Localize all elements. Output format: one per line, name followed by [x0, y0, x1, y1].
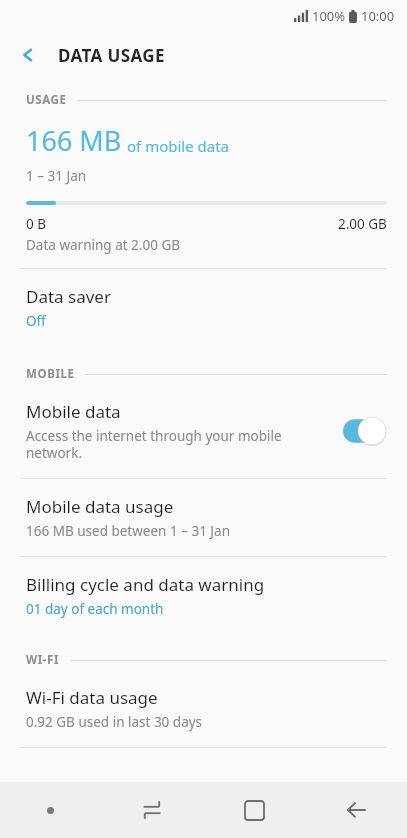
staticText: 166 MB used between 1 – 31 Jan — [26, 522, 230, 540]
staticText: Wi-Fi data usage — [26, 686, 158, 709]
staticText: 10:00 — [361, 7, 395, 25]
staticText: Access the internet through your mobile … — [26, 427, 327, 462]
staticText: DATA USAGE — [58, 44, 165, 67]
button[interactable]: Data saver — [0, 269, 407, 348]
staticText: Mobile data — [26, 400, 121, 423]
staticText: 2.00 GB — [338, 215, 387, 233]
button[interactable]: Back — [8, 35, 48, 75]
staticText: Mobile data usage — [26, 495, 174, 518]
staticText: Data saver — [26, 285, 111, 308]
staticText: USAGE — [26, 92, 67, 108]
staticText: of mobile data — [127, 136, 230, 156]
button[interactable]: Wi-Fi data usage — [0, 672, 407, 747]
button[interactable]: Mobile data — [0, 386, 407, 478]
staticText: 01 day of each month — [26, 600, 164, 618]
button[interactable]: Billing cycle and data warning — [0, 557, 407, 636]
button[interactable]: Home — [203, 782, 305, 838]
button[interactable]: Recent apps — [101, 782, 203, 838]
staticText: 1 – 31 Jan — [26, 167, 87, 185]
staticText: 0.92 GB used in last 30 days — [26, 713, 203, 731]
staticText: Billing cycle and data warning — [26, 573, 265, 596]
staticText: MOBILE — [26, 366, 75, 382]
staticText: 100% — [312, 7, 346, 25]
staticText: Off — [26, 312, 46, 330]
staticText: WI-FI — [26, 652, 60, 668]
staticText: Data warning at 2.00 GB — [26, 236, 180, 254]
button[interactable]: Back — [305, 782, 407, 838]
staticText: 166 MB — [26, 122, 122, 159]
button[interactable]: Mobile data usage — [0, 479, 407, 556]
button[interactable]: Mobile data toggle — [343, 417, 387, 445]
staticText: 0 B — [26, 215, 47, 233]
